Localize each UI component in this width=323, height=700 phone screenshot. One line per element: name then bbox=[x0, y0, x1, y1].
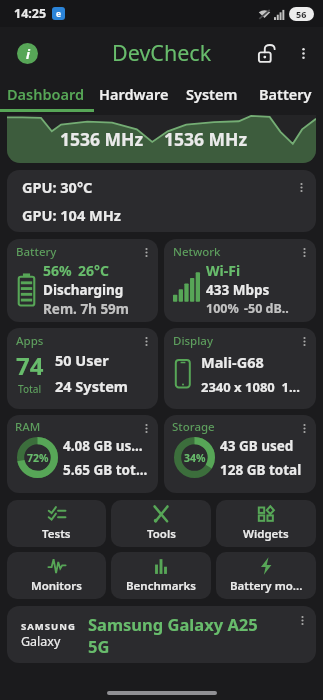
staticText: 2340 x 1080 1... bbox=[201, 378, 300, 396]
staticText: Galaxy bbox=[21, 633, 61, 650]
button[interactable]: Card options bbox=[291, 609, 313, 631]
staticText: System bbox=[186, 84, 238, 104]
button[interactable]: Battery mo... bbox=[216, 552, 316, 599]
button[interactable]: Benchmarks bbox=[111, 552, 211, 599]
button[interactable]: Card options bbox=[293, 241, 315, 263]
staticText: Benchmarks bbox=[126, 578, 196, 594]
staticText: 72% bbox=[27, 451, 49, 465]
staticText: Battery bbox=[16, 244, 57, 260]
staticText: 24 System bbox=[55, 376, 128, 396]
button[interactable]: System bbox=[176, 78, 247, 109]
button[interactable]: Tests bbox=[7, 500, 106, 547]
button[interactable]: Card options bbox=[290, 176, 312, 198]
staticText: 128 GB total bbox=[220, 461, 302, 479]
staticText: 1536 MHz bbox=[60, 127, 144, 151]
button[interactable]: Tools bbox=[111, 500, 211, 547]
staticText: 14:25 bbox=[14, 5, 47, 22]
staticText: 100% bbox=[206, 300, 239, 317]
staticText: Battery bbox=[259, 84, 312, 104]
staticText: 34% bbox=[184, 451, 206, 465]
staticText: DevCheck bbox=[112, 38, 212, 67]
staticText: Battery mo... bbox=[230, 578, 303, 594]
button[interactable]: Card options bbox=[293, 417, 315, 439]
button[interactable]: Widgets bbox=[216, 500, 316, 547]
staticText: Mali-G68 bbox=[201, 352, 264, 372]
button[interactable]: Monitors bbox=[7, 552, 106, 599]
staticText: Network bbox=[173, 244, 221, 260]
staticText: 56 bbox=[296, 8, 307, 20]
staticText: Apps bbox=[16, 333, 44, 349]
staticText: SAMSUNG bbox=[21, 620, 76, 633]
button[interactable]: Card options bbox=[135, 330, 157, 352]
button[interactable]: Unlock bbox=[246, 33, 286, 73]
staticText: 43 GB used bbox=[220, 437, 294, 455]
staticText: -50 dB.. bbox=[244, 300, 289, 317]
staticText: Tools bbox=[147, 526, 176, 542]
button[interactable]: Card options bbox=[135, 417, 157, 439]
button[interactable]: Card options bbox=[7, 328, 158, 409]
staticText: 1536 MHz bbox=[164, 127, 248, 151]
button[interactable]: Card options bbox=[164, 415, 316, 493]
button[interactable]: Info bbox=[8, 34, 46, 72]
staticText: Samsung Galaxy A25 bbox=[88, 613, 258, 635]
staticText: GPU: 104 MHz bbox=[22, 205, 121, 225]
staticText: Storage bbox=[172, 419, 215, 435]
staticText: 56% bbox=[43, 261, 72, 280]
button[interactable]: Card options bbox=[7, 415, 158, 493]
staticText: Rem. 7h 59m bbox=[43, 300, 129, 318]
button[interactable]: 1536 MHz bbox=[7, 115, 316, 163]
staticText: Total bbox=[18, 382, 42, 396]
staticText: 4.08 GB us... bbox=[63, 437, 143, 455]
button[interactable]: Card options bbox=[135, 241, 157, 263]
button[interactable]: Card options bbox=[7, 606, 316, 663]
staticText: 74 bbox=[16, 349, 44, 382]
button[interactable]: Dashboard bbox=[0, 78, 91, 109]
staticText: Monitors bbox=[31, 578, 82, 594]
button[interactable]: Card options bbox=[7, 239, 158, 322]
staticText: Discharging bbox=[43, 281, 124, 299]
staticText: i bbox=[26, 45, 30, 63]
staticText: RAM bbox=[15, 419, 41, 435]
button[interactable]: Battery bbox=[247, 78, 323, 109]
staticText: e bbox=[56, 8, 62, 20]
staticText: GPU: 30°C bbox=[22, 177, 93, 197]
staticText: Hardware bbox=[99, 84, 169, 104]
staticText: 26°C bbox=[78, 261, 109, 280]
button[interactable]: Card options bbox=[164, 328, 316, 409]
button[interactable]: More options bbox=[286, 36, 320, 70]
staticText: 5.65 GB tot... bbox=[63, 461, 148, 479]
staticText: Tests bbox=[42, 526, 71, 542]
button[interactable]: GPU: 30°C bbox=[7, 170, 316, 232]
staticText: Dashboard bbox=[7, 84, 85, 104]
staticText: 5G bbox=[88, 635, 110, 657]
button[interactable]: Card options bbox=[164, 239, 316, 322]
staticText: 433 Mbps bbox=[206, 281, 270, 299]
staticText: 50 User bbox=[55, 350, 109, 370]
button[interactable]: Card options bbox=[293, 330, 315, 352]
staticText: Display bbox=[173, 333, 213, 349]
button[interactable]: Hardware bbox=[91, 78, 176, 109]
staticText: Wi-Fi bbox=[206, 261, 241, 280]
staticText: Widgets bbox=[243, 526, 289, 542]
